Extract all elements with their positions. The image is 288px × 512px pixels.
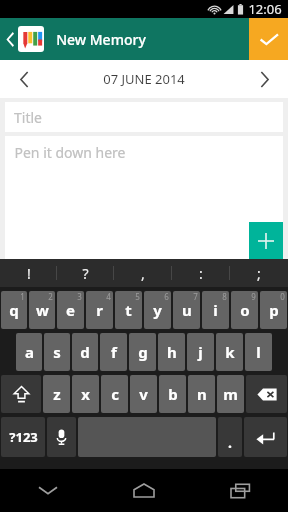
button[interactable]: Recent apps	[192, 469, 288, 512]
button[interactable]: k	[216, 333, 243, 371]
staticText: 4	[106, 291, 111, 302]
staticText: j	[198, 342, 203, 362]
button[interactable]: !	[0, 259, 57, 287]
button[interactable]: r	[86, 291, 113, 329]
button[interactable]: Next day	[240, 60, 288, 98]
staticText: :	[199, 264, 203, 283]
button[interactable]: m	[217, 375, 244, 413]
button[interactable]: Previous day	[0, 60, 48, 98]
button[interactable]: e	[57, 291, 84, 329]
button[interactable]: z	[43, 375, 70, 413]
staticText: b	[168, 384, 178, 404]
button[interactable]: t	[115, 291, 142, 329]
staticText: s	[53, 342, 61, 362]
staticText: a	[25, 342, 34, 362]
button[interactable]: ?	[57, 259, 114, 287]
staticText: i	[213, 300, 218, 320]
button[interactable]: Save	[249, 18, 288, 60]
button[interactable]: v	[130, 375, 157, 413]
staticText: e	[66, 300, 75, 320]
staticText: v	[139, 384, 148, 404]
staticText: 0	[280, 291, 285, 302]
button[interactable]: Hide keyboard	[0, 469, 96, 512]
staticText: n	[197, 384, 207, 404]
staticText: 3	[77, 291, 82, 302]
button[interactable]: c	[101, 375, 128, 413]
staticText: f	[111, 342, 117, 362]
staticText: !	[27, 264, 31, 283]
button[interactable]: f	[100, 333, 127, 371]
staticText: Title	[14, 108, 42, 127]
staticText: u	[182, 300, 192, 320]
button[interactable]: ,	[114, 259, 172, 287]
button[interactable]: w	[29, 291, 55, 329]
button[interactable]: Add	[249, 222, 283, 259]
button[interactable]: Enter	[244, 417, 287, 457]
button[interactable]: :	[172, 259, 230, 287]
staticText: d	[80, 342, 90, 362]
staticText: y	[153, 300, 162, 320]
button[interactable]: q	[1, 291, 27, 329]
staticText: 5	[135, 291, 140, 302]
staticText: p	[269, 300, 279, 320]
staticText: o	[240, 300, 250, 320]
staticText: q	[9, 300, 19, 320]
staticText: ,	[141, 264, 145, 283]
staticText: 6	[164, 291, 169, 302]
button[interactable]: ;	[230, 259, 288, 287]
button[interactable]: Title	[5, 102, 283, 132]
staticText: w	[36, 300, 49, 320]
button[interactable]: s	[44, 333, 70, 371]
button[interactable]: Voice input	[47, 417, 76, 457]
staticText: k	[225, 342, 235, 362]
button[interactable]: l	[245, 333, 272, 371]
button[interactable]: b	[159, 375, 186, 413]
staticText: m	[223, 384, 238, 404]
staticText: ;	[257, 264, 261, 283]
button[interactable]: g	[129, 333, 156, 371]
staticText: c	[111, 384, 119, 404]
staticText: New Memory	[56, 30, 146, 49]
staticText: 7	[193, 291, 198, 302]
staticText: l	[256, 342, 261, 362]
button[interactable]: d	[72, 333, 98, 371]
button[interactable]: h	[158, 333, 185, 371]
staticText: ?	[82, 264, 89, 283]
button[interactable]: y	[144, 291, 171, 329]
button[interactable]: o	[231, 291, 258, 329]
staticText: g	[138, 342, 148, 362]
button[interactable]: a	[16, 333, 42, 371]
staticText: x	[81, 384, 90, 404]
staticText: 8	[222, 291, 227, 302]
staticText: h	[167, 342, 177, 362]
button[interactable]: Home	[96, 469, 192, 512]
button[interactable]: i	[202, 291, 229, 329]
button[interactable]: ?123	[1, 417, 45, 457]
button[interactable]: Pen it down here	[5, 136, 283, 259]
button[interactable]: x	[72, 375, 99, 413]
button[interactable]: Shift	[1, 375, 41, 413]
button[interactable]: j	[187, 333, 214, 371]
button[interactable]: .	[218, 417, 242, 457]
button[interactable]: u	[173, 291, 200, 329]
staticText: r	[96, 300, 103, 320]
button[interactable]: n	[188, 375, 215, 413]
button[interactable]: Backspace	[246, 375, 287, 413]
button[interactable]: p	[260, 291, 287, 329]
staticText: 9	[251, 291, 256, 302]
staticText: z	[53, 384, 61, 404]
staticText: .	[228, 433, 232, 452]
staticText: t	[125, 300, 132, 320]
staticText: 1	[20, 291, 25, 302]
staticText: 07 JUNE 2014	[103, 70, 185, 88]
staticText: ?123	[9, 428, 38, 446]
staticText: 12:06	[248, 0, 282, 18]
staticText: 2	[48, 291, 53, 302]
button[interactable]: New Memory	[0, 18, 249, 60]
staticText: Pen it down here	[14, 143, 126, 162]
